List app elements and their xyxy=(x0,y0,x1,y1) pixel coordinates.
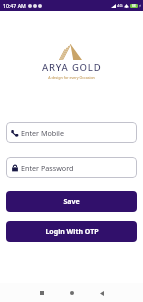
staticText: 4G xyxy=(117,3,123,9)
staticText: Login With OTP xyxy=(45,227,99,237)
button[interactable]: Recent apps xyxy=(34,285,50,301)
button[interactable]: Login With OTP xyxy=(6,221,137,242)
staticText: 88 xyxy=(132,4,136,8)
staticText: A design for every Occasion xyxy=(48,75,95,80)
button[interactable]: Enter Password xyxy=(6,157,137,178)
button[interactable]: Home xyxy=(64,285,80,301)
staticText: ARYA GOLD xyxy=(42,61,102,74)
button[interactable]: Enter Mobile xyxy=(6,122,137,143)
staticText: Save xyxy=(63,197,80,207)
button[interactable]: Back xyxy=(94,285,110,301)
staticText: Enter Password xyxy=(21,163,74,173)
button[interactable]: Save xyxy=(6,191,137,212)
staticText: 10:47 AM xyxy=(3,2,26,9)
staticText: Enter Mobile xyxy=(21,128,64,138)
